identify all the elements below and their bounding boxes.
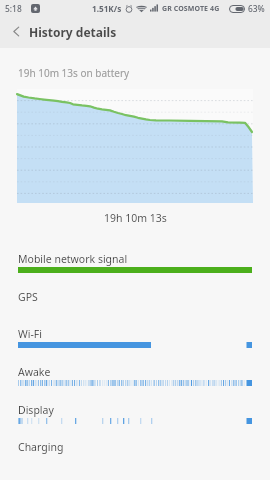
staticText: 1.51K/s [92,3,122,14]
button[interactable]: Display [0,403,270,440]
staticText: Display [18,403,54,417]
staticText: Wi-Fi [18,327,43,341]
staticText: 63% [248,3,265,14]
button[interactable]: Back [3,18,29,44]
button[interactable]: GPS [0,290,270,327]
staticText: Awake [18,365,51,379]
button[interactable]: Awake [0,365,270,402]
staticText: History details [29,24,117,40]
staticText: 19h 10m 13s [104,211,167,225]
button[interactable]: Mobile network signal [0,252,270,289]
staticText: 19h 10m 13s on battery [18,66,130,80]
staticText: Charging [18,440,64,454]
staticText: Mobile network signal [18,252,128,266]
button[interactable]: Wi-Fi [0,327,270,364]
staticText: 5:18 [5,3,22,14]
staticText: GR COSMOTE 4G [162,4,220,14]
staticText: GPS [18,290,38,304]
button[interactable]: Charging [0,440,270,477]
